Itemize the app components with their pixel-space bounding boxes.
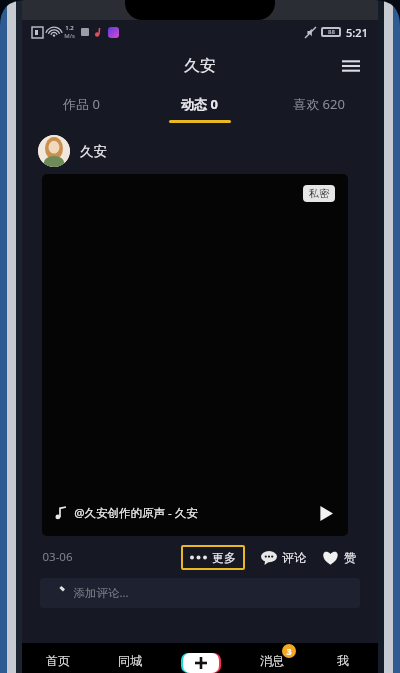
staticText: 更多	[212, 550, 236, 565]
staticText: 动态 0	[181, 95, 218, 113]
staticText: 喜欢 620	[293, 95, 345, 113]
button[interactable]: 作品 0	[22, 88, 140, 128]
staticText: 评论	[282, 550, 306, 565]
staticText: 3	[286, 645, 292, 657]
staticText: 88	[328, 28, 335, 36]
button[interactable]: 评论	[261, 546, 306, 569]
button[interactable]: Create	[181, 653, 221, 673]
staticText: 久安	[80, 143, 107, 160]
staticText: @久安创作的原声 - 久安	[74, 505, 198, 521]
button[interactable]: 消息	[260, 653, 284, 673]
button[interactable]: Menu	[336, 51, 366, 81]
button[interactable]: 更多	[181, 545, 245, 570]
staticText: 久安	[184, 56, 216, 76]
staticText: 03-06	[42, 549, 73, 565]
staticText: 我	[337, 653, 349, 668]
button[interactable]: 动态 0	[140, 88, 259, 128]
staticText: 赞	[344, 550, 356, 565]
button[interactable]: 久安	[38, 128, 378, 174]
staticText: 私密	[309, 187, 329, 200]
button[interactable]: 添加评论...	[40, 578, 360, 608]
staticText: 首页	[46, 653, 70, 668]
button[interactable]: 喜欢 620	[259, 88, 378, 128]
button[interactable]: 我	[307, 653, 378, 673]
staticText: 5:21	[346, 25, 368, 40]
button[interactable]: 赞	[322, 546, 356, 569]
staticText: 1.2	[65, 24, 74, 32]
staticText: 添加评论...	[73, 585, 129, 601]
button[interactable]: 同城	[94, 653, 165, 673]
staticText: 消息	[260, 653, 284, 668]
button[interactable]: 私密	[42, 174, 348, 536]
staticText: 作品 0	[63, 95, 100, 113]
staticText: 同城	[118, 653, 142, 668]
button[interactable]: 首页	[22, 653, 94, 673]
button[interactable]: Play	[314, 502, 336, 524]
staticText: M/s	[64, 32, 75, 40]
